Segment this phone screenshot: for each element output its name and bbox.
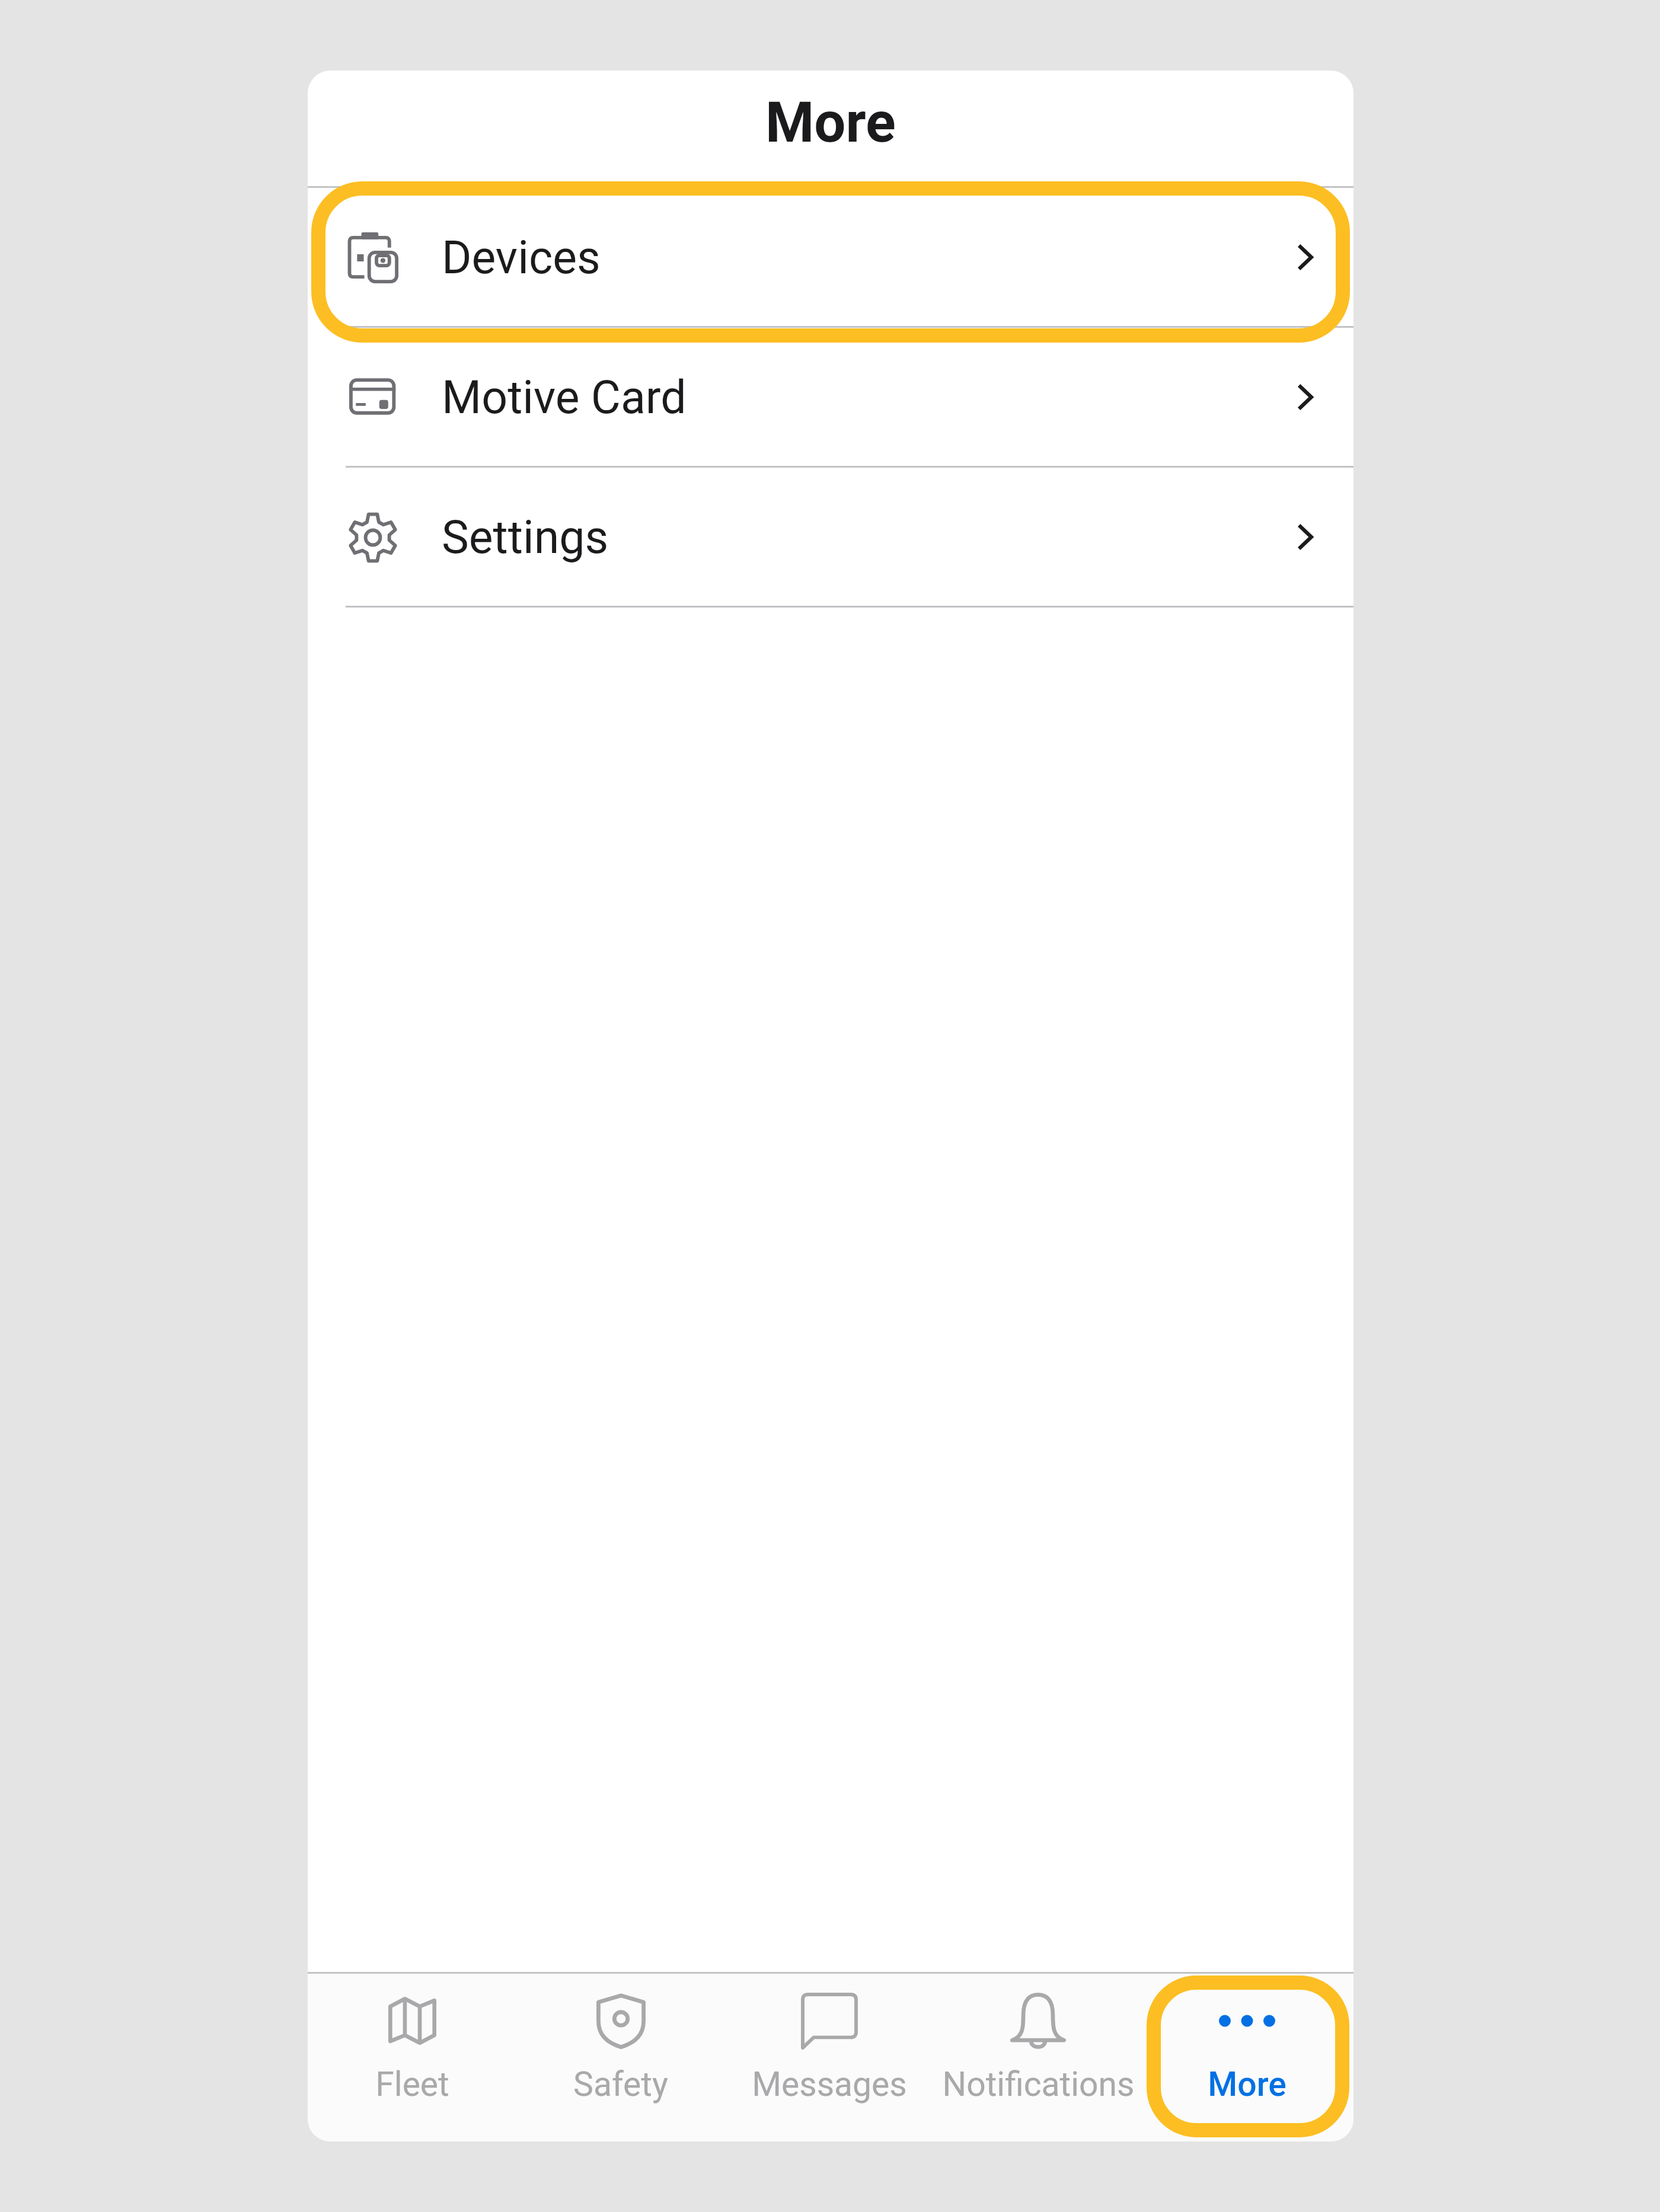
button[interactable]: More: [1142, 1974, 1351, 2141]
staticText: Messages: [752, 2064, 907, 2104]
button[interactable]: Safety: [516, 1974, 725, 2141]
button[interactable]: Devices: [308, 188, 1353, 328]
staticText: Safety: [573, 2064, 668, 2104]
staticText: Settings: [442, 511, 609, 564]
button[interactable]: Messages: [725, 1974, 934, 2141]
button[interactable]: Motive Card: [308, 328, 1353, 468]
staticText: More: [765, 90, 896, 155]
staticText: More: [1208, 2064, 1286, 2104]
button[interactable]: Settings: [308, 468, 1353, 608]
staticText: Devices: [442, 231, 601, 285]
staticText: Motive Card: [442, 371, 687, 424]
staticText: Notifications: [942, 2064, 1135, 2104]
staticText: Fleet: [375, 2064, 449, 2104]
button[interactable]: Notifications: [934, 1974, 1142, 2141]
button[interactable]: Fleet: [308, 1974, 516, 2141]
